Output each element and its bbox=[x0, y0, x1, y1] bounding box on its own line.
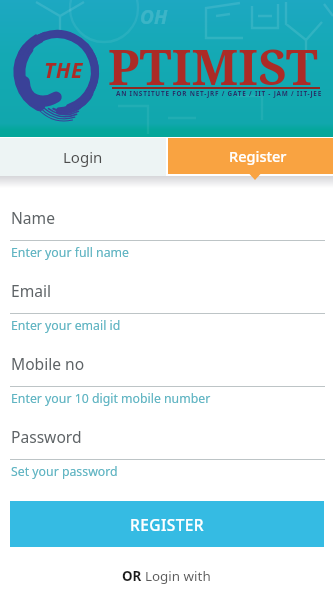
staticText: Name bbox=[11, 207, 55, 228]
button[interactable]: Login bbox=[0, 138, 166, 176]
staticText: Password bbox=[11, 426, 82, 447]
staticText: REGISTER bbox=[130, 514, 205, 535]
staticText: Login bbox=[63, 147, 103, 167]
button[interactable]: Password bbox=[10, 423, 325, 485]
staticText: Enter your 10 digit mobile number bbox=[11, 390, 211, 407]
staticText: PTIMIST bbox=[108, 33, 318, 100]
staticText: OH bbox=[140, 4, 168, 30]
staticText: Enter your email id bbox=[11, 317, 121, 334]
staticText: AN INSTITUTE FOR NET-JRF / GATE / IIT - … bbox=[116, 89, 323, 98]
button[interactable]: REGISTER bbox=[10, 501, 324, 547]
button[interactable]: OR bbox=[122, 567, 211, 585]
staticText: Login with bbox=[145, 567, 211, 585]
button[interactable]: Name bbox=[10, 204, 325, 266]
button[interactable]: Mobile no bbox=[10, 350, 325, 412]
staticText: THE bbox=[44, 56, 83, 85]
button[interactable]: Email bbox=[10, 277, 325, 339]
staticText: Mobile no bbox=[11, 353, 85, 374]
button[interactable]: Register bbox=[168, 138, 333, 174]
staticText: Set your password bbox=[11, 463, 118, 480]
staticText: Register bbox=[229, 146, 287, 166]
staticText: Email bbox=[11, 280, 52, 301]
staticText: Enter your full name bbox=[11, 244, 129, 261]
staticText: OR bbox=[122, 567, 145, 585]
